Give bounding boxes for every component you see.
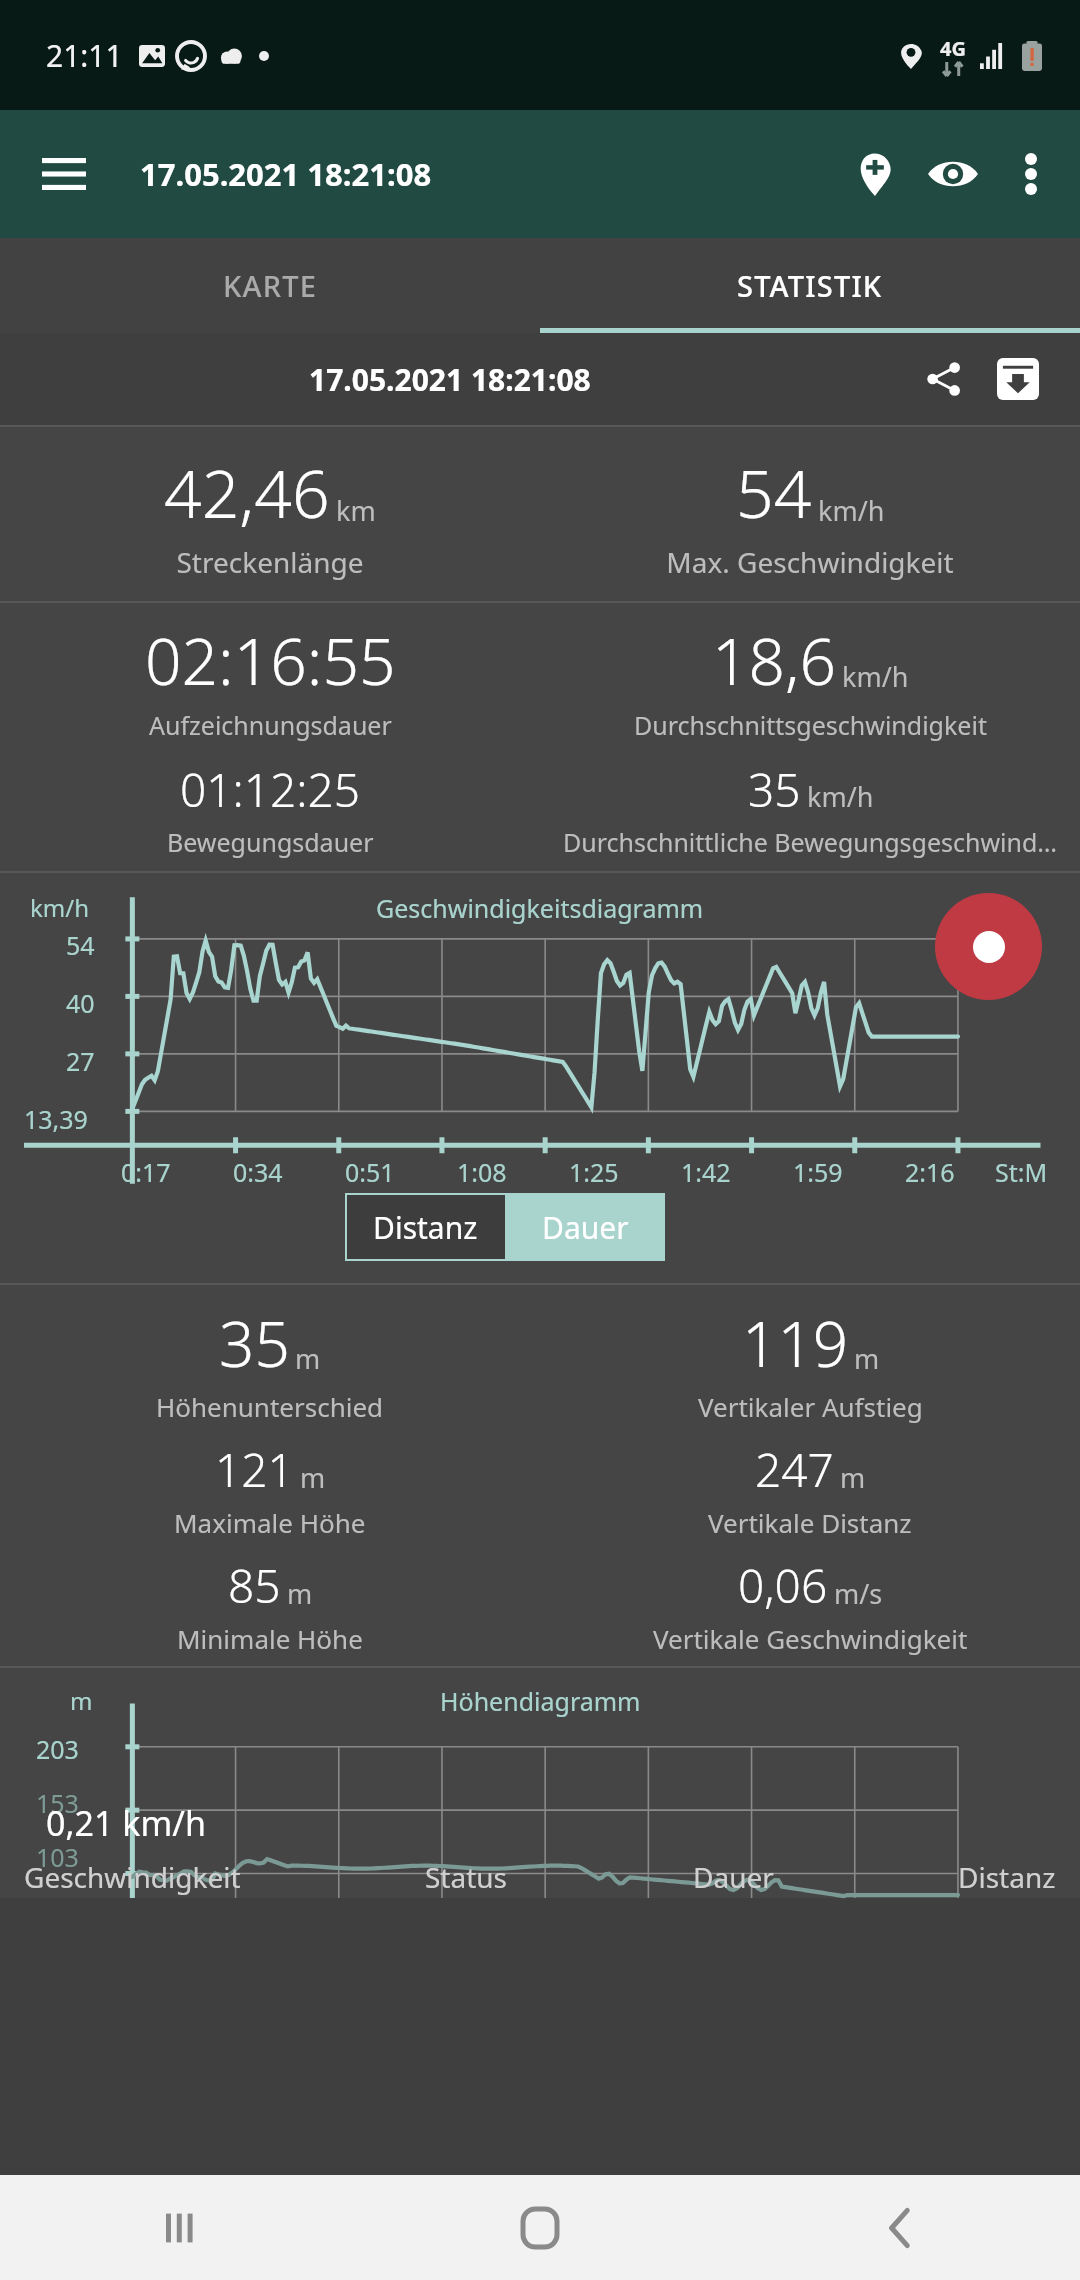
button[interactable]: 121 xyxy=(0,1438,540,1540)
staticText: 247 xyxy=(755,1438,834,1501)
staticText: 02:16:55 xyxy=(145,617,396,704)
staticText: Status xyxy=(425,1858,508,1896)
staticText: Durchschnittsgeschwindigkeit xyxy=(634,708,987,742)
button[interactable]: 35 xyxy=(540,758,1080,859)
staticText: Höhenunterschied xyxy=(156,1389,384,1424)
staticText: Distanz xyxy=(373,1207,478,1248)
staticText: Max. Geschwindigkeit xyxy=(666,543,954,581)
button[interactable]: Wegpunkt hinzufügen xyxy=(836,135,914,213)
staticText: Distanz xyxy=(958,1858,1056,1896)
staticText: 13,39 xyxy=(24,1102,88,1136)
staticText: 119 xyxy=(742,1301,849,1385)
staticText: 0:51 xyxy=(345,1155,395,1189)
button[interactable]: 02:16:55 xyxy=(0,617,540,742)
staticText: m xyxy=(70,1684,93,1717)
staticText: 1:08 xyxy=(457,1155,507,1189)
staticText: 85 xyxy=(228,1554,281,1617)
staticText: 1:42 xyxy=(681,1155,731,1189)
button[interactable]: 119 xyxy=(540,1301,1080,1424)
staticText: km/h xyxy=(807,778,874,815)
staticText: 35 xyxy=(219,1301,290,1385)
staticText: Maximale Höhe xyxy=(174,1505,366,1540)
staticText: km/h xyxy=(818,492,885,529)
staticText: 35 xyxy=(748,758,801,821)
button[interactable]: Menü xyxy=(26,136,102,212)
staticText: 1:25 xyxy=(569,1155,619,1189)
button[interactable]: Speichern xyxy=(984,345,1052,413)
staticText: Aufzeichnungsdauer xyxy=(149,708,392,742)
button[interactable]: 18,6 xyxy=(540,617,1080,742)
button[interactable]: Weitere Optionen xyxy=(992,135,1070,213)
staticText: Dauer xyxy=(693,1858,774,1896)
staticText: Höhendiagramm xyxy=(440,1684,641,1718)
button[interactable]: 0,06 xyxy=(540,1554,1080,1656)
button[interactable]: 42,46 xyxy=(0,447,540,581)
staticText: Durchschnittliche Bewegungsgeschwind… xyxy=(563,825,1058,859)
staticText: Geschwindigkeitsdiagramm xyxy=(376,891,704,925)
staticText: 0,21 km/h xyxy=(46,1800,206,1846)
staticText: m/s xyxy=(834,1575,883,1612)
staticText: 1:59 xyxy=(793,1155,843,1189)
staticText: m xyxy=(300,1459,326,1496)
staticText: 103 xyxy=(36,1840,79,1874)
staticText: km/h xyxy=(842,658,909,695)
staticText: Bewegungsdauer xyxy=(167,825,374,859)
button[interactable]: 54 xyxy=(540,447,1080,581)
staticText: km/h xyxy=(30,891,90,924)
staticText: 18,6 xyxy=(712,617,837,704)
staticText: KARTE xyxy=(223,266,318,305)
staticText: 17.05.2021 18:21:08 xyxy=(140,153,432,195)
button[interactable]: STATISTIK xyxy=(540,238,1080,333)
button[interactable]: 01:12:25 xyxy=(0,758,540,859)
staticText: 203 xyxy=(36,1732,79,1766)
staticText: 27 xyxy=(66,1044,95,1078)
staticText: 42,46 xyxy=(164,447,330,537)
staticText: m xyxy=(854,1340,880,1377)
button[interactable]: Aufzeichnung starten xyxy=(935,893,1042,1000)
staticText: Dauer xyxy=(542,1207,629,1248)
staticText: 0,06 xyxy=(738,1554,828,1617)
staticText: km xyxy=(336,492,376,529)
staticText: Vertikale Geschwindigkeit xyxy=(653,1621,968,1656)
staticText: 54 xyxy=(66,928,95,962)
button[interactable]: Teilen xyxy=(910,345,978,413)
staticText: 01:12:25 xyxy=(180,758,361,821)
staticText: St:M xyxy=(995,1155,1048,1189)
button[interactable]: Sichtbarkeit xyxy=(914,135,992,213)
staticText: 121 xyxy=(215,1438,294,1501)
staticText: 21:11 xyxy=(46,35,123,76)
button[interactable]: Distanz xyxy=(345,1193,505,1261)
button[interactable]: KARTE xyxy=(0,238,540,333)
staticText: 40 xyxy=(66,986,95,1020)
staticText: Vertikaler Aufstieg xyxy=(698,1389,923,1424)
staticText: m xyxy=(295,1340,321,1377)
staticText: Geschwindigkeit xyxy=(24,1858,241,1896)
button[interactable]: 247 xyxy=(540,1438,1080,1540)
button[interactable]: Zurück xyxy=(720,2175,1080,2280)
staticText: 4G xyxy=(940,35,966,62)
staticText: 17.05.2021 18:21:08 xyxy=(309,359,591,400)
button[interactable]: Dauer xyxy=(505,1193,665,1261)
staticText: m xyxy=(840,1459,866,1496)
staticText: Streckenlänge xyxy=(176,543,364,581)
button[interactable]: 35 xyxy=(0,1301,540,1424)
staticText: 0:17 xyxy=(121,1155,171,1189)
staticText: 2:16 xyxy=(905,1155,955,1189)
staticText: m xyxy=(287,1575,313,1612)
staticText: 54 xyxy=(736,447,812,537)
staticText: Minimale Höhe xyxy=(177,1621,363,1656)
staticText: Vertikale Distanz xyxy=(708,1505,912,1540)
button[interactable]: Zuletzt verwendet xyxy=(0,2175,360,2280)
button[interactable]: Startbildschirm xyxy=(360,2175,720,2280)
staticText: 0:34 xyxy=(233,1155,283,1189)
staticText: 153 xyxy=(36,1786,79,1820)
button[interactable]: 85 xyxy=(0,1554,540,1656)
staticText: STATISTIK xyxy=(737,266,883,305)
